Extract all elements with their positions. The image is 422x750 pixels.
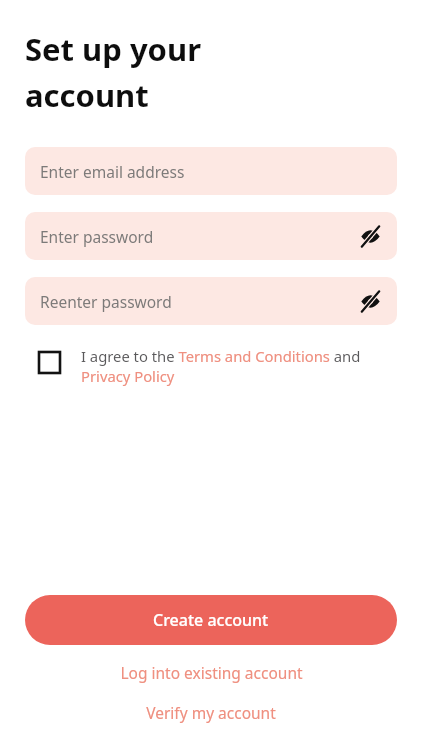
button[interactable]: I agree to the Terms and Conditions and … <box>0 346 422 387</box>
button[interactable]: Show password <box>357 288 383 314</box>
staticText: Create account <box>153 609 269 631</box>
button[interactable]: Log into existing account <box>0 657 422 688</box>
button[interactable]: Enter email address <box>25 147 397 195</box>
staticText: Reenter password <box>40 291 357 312</box>
staticText: Verify my account <box>146 702 276 723</box>
button[interactable]: Reenter password <box>25 277 397 325</box>
button[interactable]: Verify my account <box>0 697 422 728</box>
staticText: Enter password <box>40 226 357 247</box>
button[interactable]: Show password <box>357 223 383 249</box>
staticText: I agree to the Terms and Conditions and … <box>81 346 394 387</box>
staticText: Log into existing account <box>120 662 303 683</box>
button[interactable]: Enter password <box>25 212 397 260</box>
staticText: Enter email address <box>40 161 383 182</box>
staticText: Set up your account <box>25 28 201 116</box>
button[interactable]: Create account <box>25 595 397 645</box>
